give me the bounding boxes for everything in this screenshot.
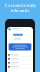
button[interactable] — [8, 65, 32, 69]
button[interactable] — [8, 53, 32, 57]
button[interactable] — [8, 61, 32, 65]
staticText: Customize daily — [4, 2, 35, 8]
staticText: info cards — [10, 8, 29, 13]
button[interactable] — [8, 57, 32, 61]
